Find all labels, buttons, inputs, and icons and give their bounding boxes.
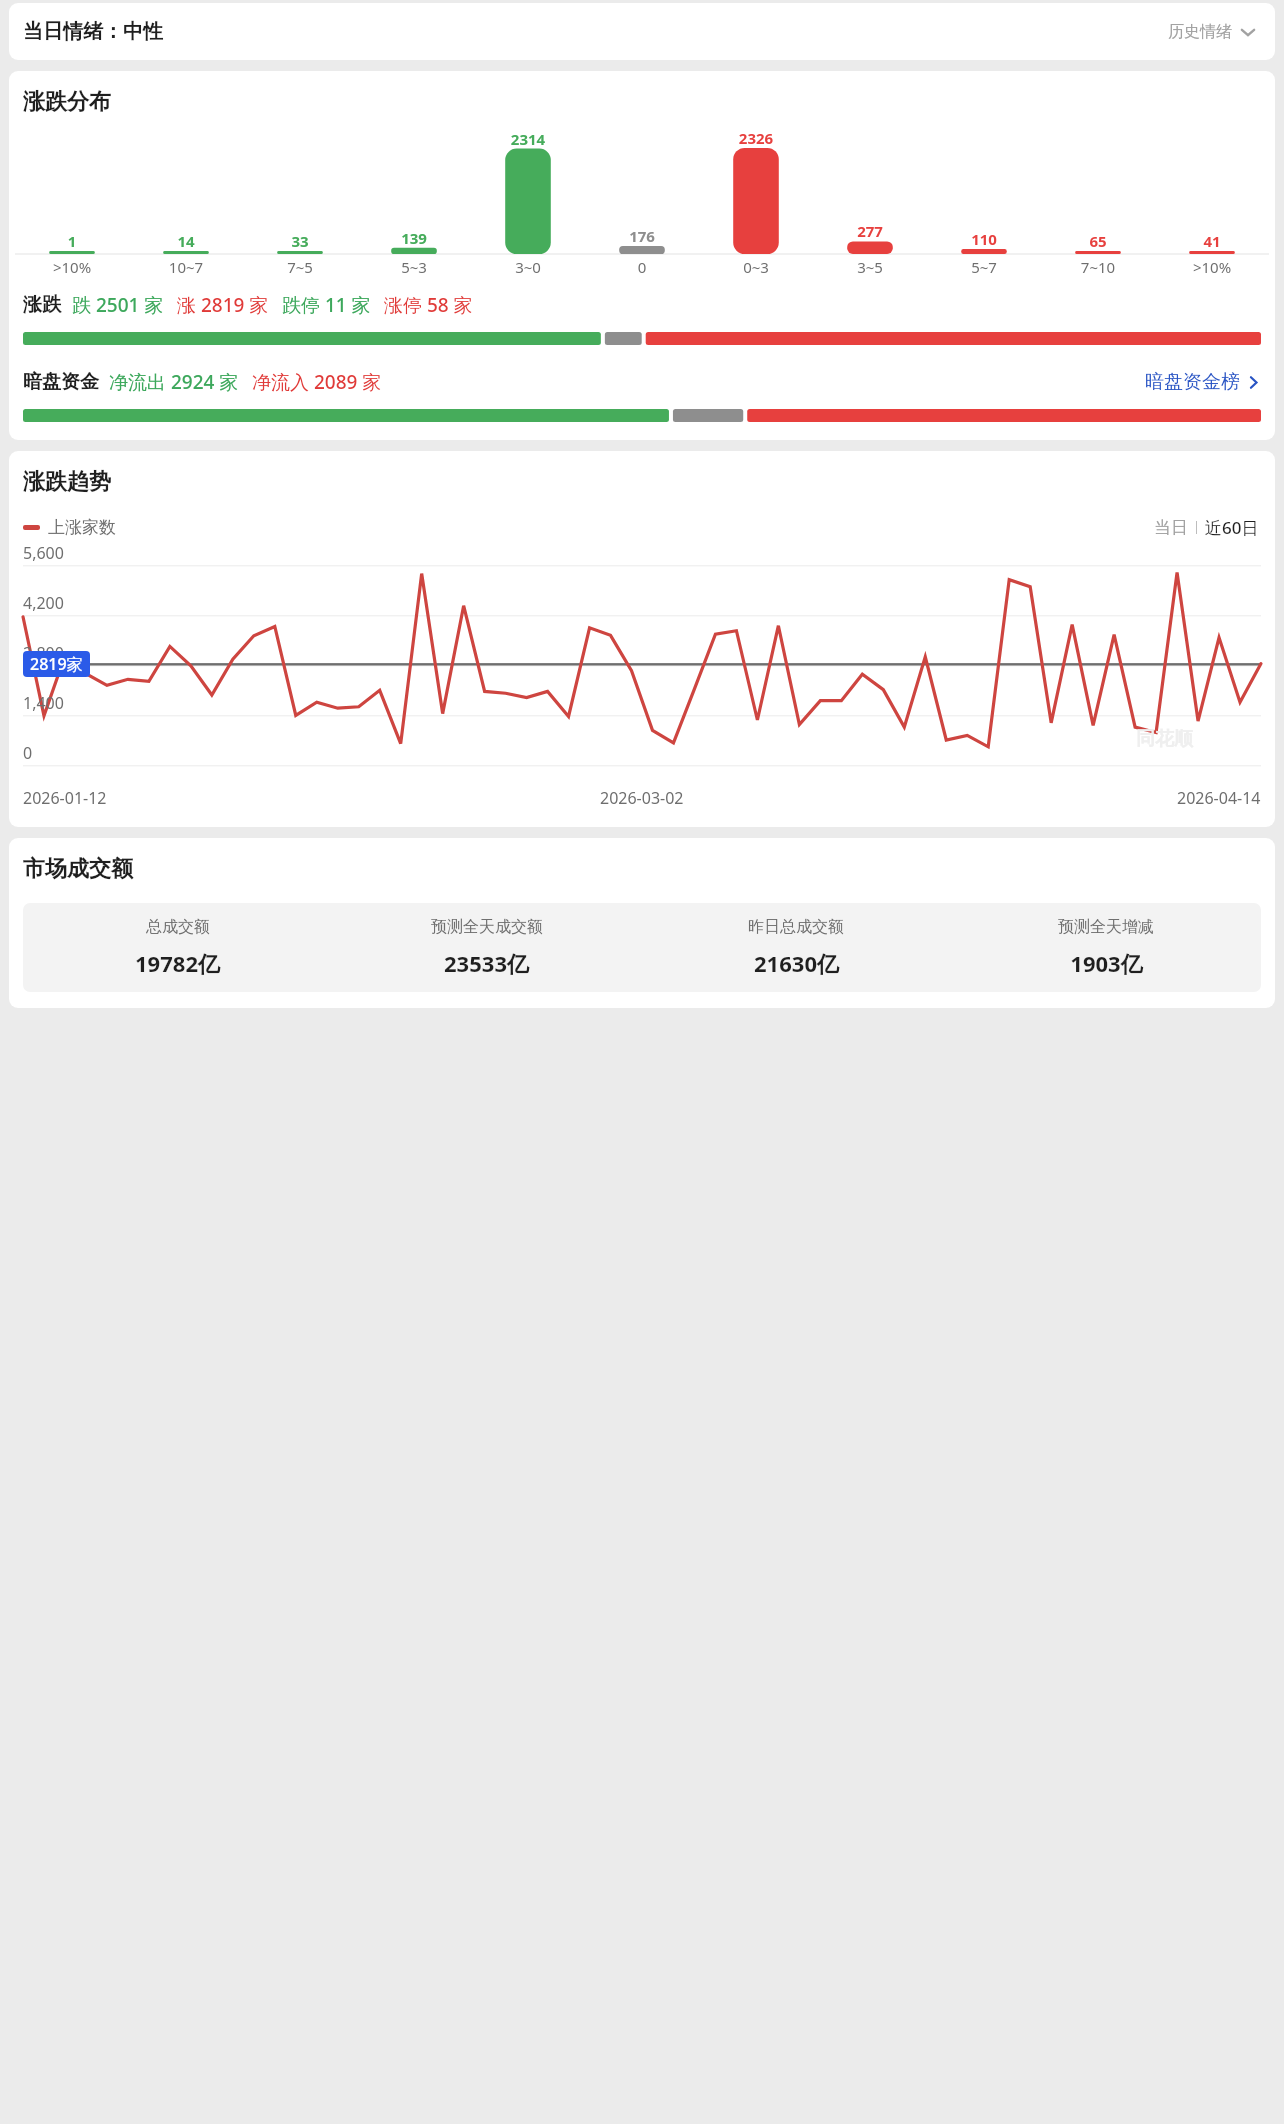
staticText: 2026-01-12 [23, 787, 107, 809]
staticText: 33 [243, 231, 357, 251]
staticText: 总成交额 [146, 917, 210, 937]
staticText: 176 [585, 226, 699, 246]
staticText: >10% [15, 257, 129, 277]
staticText: 上涨家数 [48, 517, 116, 538]
staticText: 277 [813, 221, 927, 241]
staticText: 涨停 58 家 [384, 292, 473, 318]
staticText: 暗盘资金榜 [1145, 370, 1240, 394]
staticText: 2819家 [30, 653, 83, 675]
staticText: 3~0 [471, 257, 585, 277]
staticText: 市场成交额 [23, 855, 133, 883]
staticText: 净流入 2089 家 [252, 369, 382, 395]
staticText: 涨跌 [23, 293, 61, 317]
staticText: 19782亿 [135, 948, 220, 978]
staticText: 2314 [471, 129, 585, 149]
staticText: 预测全天增减 [1058, 917, 1154, 937]
staticText: 5~3 [357, 257, 471, 277]
staticText: 3~5 [813, 257, 927, 277]
staticText: 2026-03-02 [600, 787, 684, 809]
button[interactable]: 当日 [1152, 515, 1190, 540]
staticText: 21630亿 [754, 948, 839, 978]
staticText: 历史情绪 [1168, 22, 1232, 42]
staticText: 涨跌分布 [23, 88, 111, 116]
staticText: 暗盘资金 [23, 370, 99, 394]
staticText: 41 [1155, 231, 1269, 251]
staticText: 5~7 [927, 257, 1041, 277]
staticText: 23533亿 [444, 948, 529, 978]
staticText: 1 [15, 231, 129, 251]
staticText: 当日情绪：中性 [23, 19, 163, 44]
staticText: 昨日总成交额 [748, 917, 844, 937]
staticText: 0~3 [699, 257, 813, 277]
button[interactable]: 历史情绪 [1164, 18, 1261, 46]
staticText: 139 [357, 228, 471, 248]
staticText: 5,600 [23, 542, 64, 564]
staticText: 跌 2501 家 [72, 292, 164, 318]
staticText: 同花顺 [1136, 727, 1193, 751]
staticText: 65 [1041, 231, 1155, 251]
staticText: 1,400 [23, 692, 64, 714]
staticText: 涨 2819 家 [177, 292, 269, 318]
staticText: 110 [927, 229, 1041, 249]
staticText: 0 [23, 742, 33, 764]
staticText: 2326 [699, 128, 813, 148]
button[interactable]: 暗盘资金榜 [1145, 370, 1261, 394]
staticText: 0 [585, 257, 699, 277]
staticText: 14 [129, 231, 243, 251]
staticText: 净流出 2924 家 [109, 369, 239, 395]
staticText: 预测全天成交额 [431, 917, 543, 937]
staticText: 4,200 [23, 592, 64, 614]
staticText: 2,800 [23, 642, 64, 664]
button[interactable]: 近60日 [1203, 514, 1261, 541]
staticText: 跌停 11 家 [282, 292, 371, 318]
staticText: 1903亿 [1070, 948, 1143, 978]
staticText: 涨跌趋势 [23, 468, 111, 496]
staticText: 10~7 [129, 257, 243, 277]
staticText: 7~5 [243, 257, 357, 277]
button[interactable]: 涨跌 [9, 292, 1275, 318]
staticText: >10% [1155, 257, 1269, 277]
staticText: 2026-04-14 [1177, 787, 1261, 809]
staticText: 7~10 [1041, 257, 1155, 277]
